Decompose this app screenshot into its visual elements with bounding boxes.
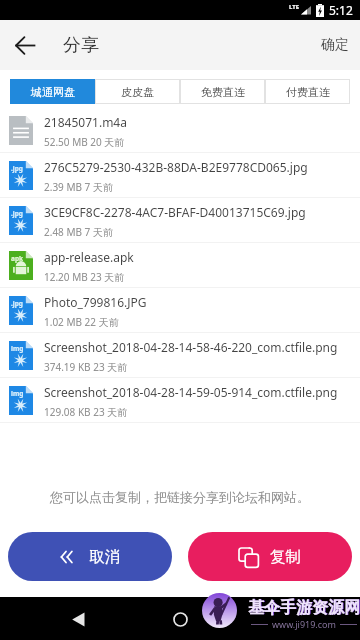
- staticText: 免费直连: [201, 85, 245, 99]
- staticText: .jpg: [11, 209, 23, 218]
- staticText: 1.02 MB 22 天前: [44, 315, 119, 329]
- staticText: img: [11, 389, 24, 398]
- button[interactable]: Back: [64, 605, 92, 633]
- staticText: 2.39 MB 7 天前: [44, 180, 113, 194]
- button[interactable]: 复制: [188, 532, 352, 581]
- button[interactable]: 免费直连: [180, 79, 265, 104]
- staticText: Photo_799816.JPG: [44, 294, 147, 310]
- staticText: 您可以点击复制，把链接分享到论坛和网站。: [0, 489, 360, 505]
- button[interactable]: 21845071.m4a: [0, 108, 360, 153]
- staticText: 皮皮盘: [121, 85, 154, 99]
- button[interactable]: 城通网盘: [10, 79, 95, 104]
- button[interactable]: img: [0, 333, 360, 378]
- button[interactable]: 付费直连: [265, 79, 350, 104]
- button[interactable]: Home: [166, 605, 194, 633]
- staticText: app-release.apk: [44, 249, 134, 265]
- staticText: Screenshot_2018-04-28-14-58-46-220_com.c…: [44, 339, 338, 355]
- staticText: 129.08 KB 23 天前: [44, 405, 128, 419]
- button[interactable]: img: [0, 378, 360, 423]
- staticText: 52.50 MB 20 天前: [44, 135, 125, 149]
- staticText: 基伞手游资源网: [249, 598, 360, 618]
- staticText: 分享: [63, 34, 99, 57]
- staticText: 276C5279-2530-432B-88DA-B2E9778CD065.jpg: [44, 159, 308, 175]
- button[interactable]: .jpg: [0, 288, 360, 333]
- button[interactable]: apk: [0, 243, 360, 288]
- staticText: apk: [11, 254, 24, 263]
- button[interactable]: 皮皮盘: [95, 79, 180, 104]
- staticText: .jpg: [11, 299, 23, 308]
- staticText: 基伞手游资源网: [248, 598, 360, 618]
- button[interactable]: 取消: [8, 532, 172, 581]
- button[interactable]: .jpg: [0, 153, 360, 198]
- staticText: LTE: [289, 3, 300, 11]
- staticText: 3CE9CF8C-2278-4AC7-BFAF-D40013715C69.jpg: [44, 204, 306, 220]
- staticText: 2.48 MB 7 天前: [44, 225, 113, 239]
- staticText: .jpg: [11, 164, 23, 173]
- staticText: 复制: [270, 547, 301, 567]
- button[interactable]: Back: [7, 27, 44, 64]
- staticText: 374.19 KB 23 天前: [44, 360, 128, 374]
- button[interactable]: .jpg: [0, 198, 360, 243]
- staticText: www.ji919.com: [272, 618, 336, 630]
- staticText: 取消: [89, 547, 120, 567]
- staticText: img: [11, 344, 24, 353]
- staticText: Screenshot_2018-04-28-14-59-05-914_com.c…: [44, 384, 338, 400]
- button[interactable]: 确定: [310, 24, 360, 66]
- staticText: 确定: [321, 36, 349, 54]
- staticText: 21845071.m4a: [44, 114, 127, 130]
- staticText: 付费直连: [286, 85, 330, 99]
- staticText: 城通网盘: [31, 85, 75, 99]
- staticText: 12.20 MB 23 天前: [44, 270, 125, 284]
- staticText: 5:12: [329, 2, 353, 18]
